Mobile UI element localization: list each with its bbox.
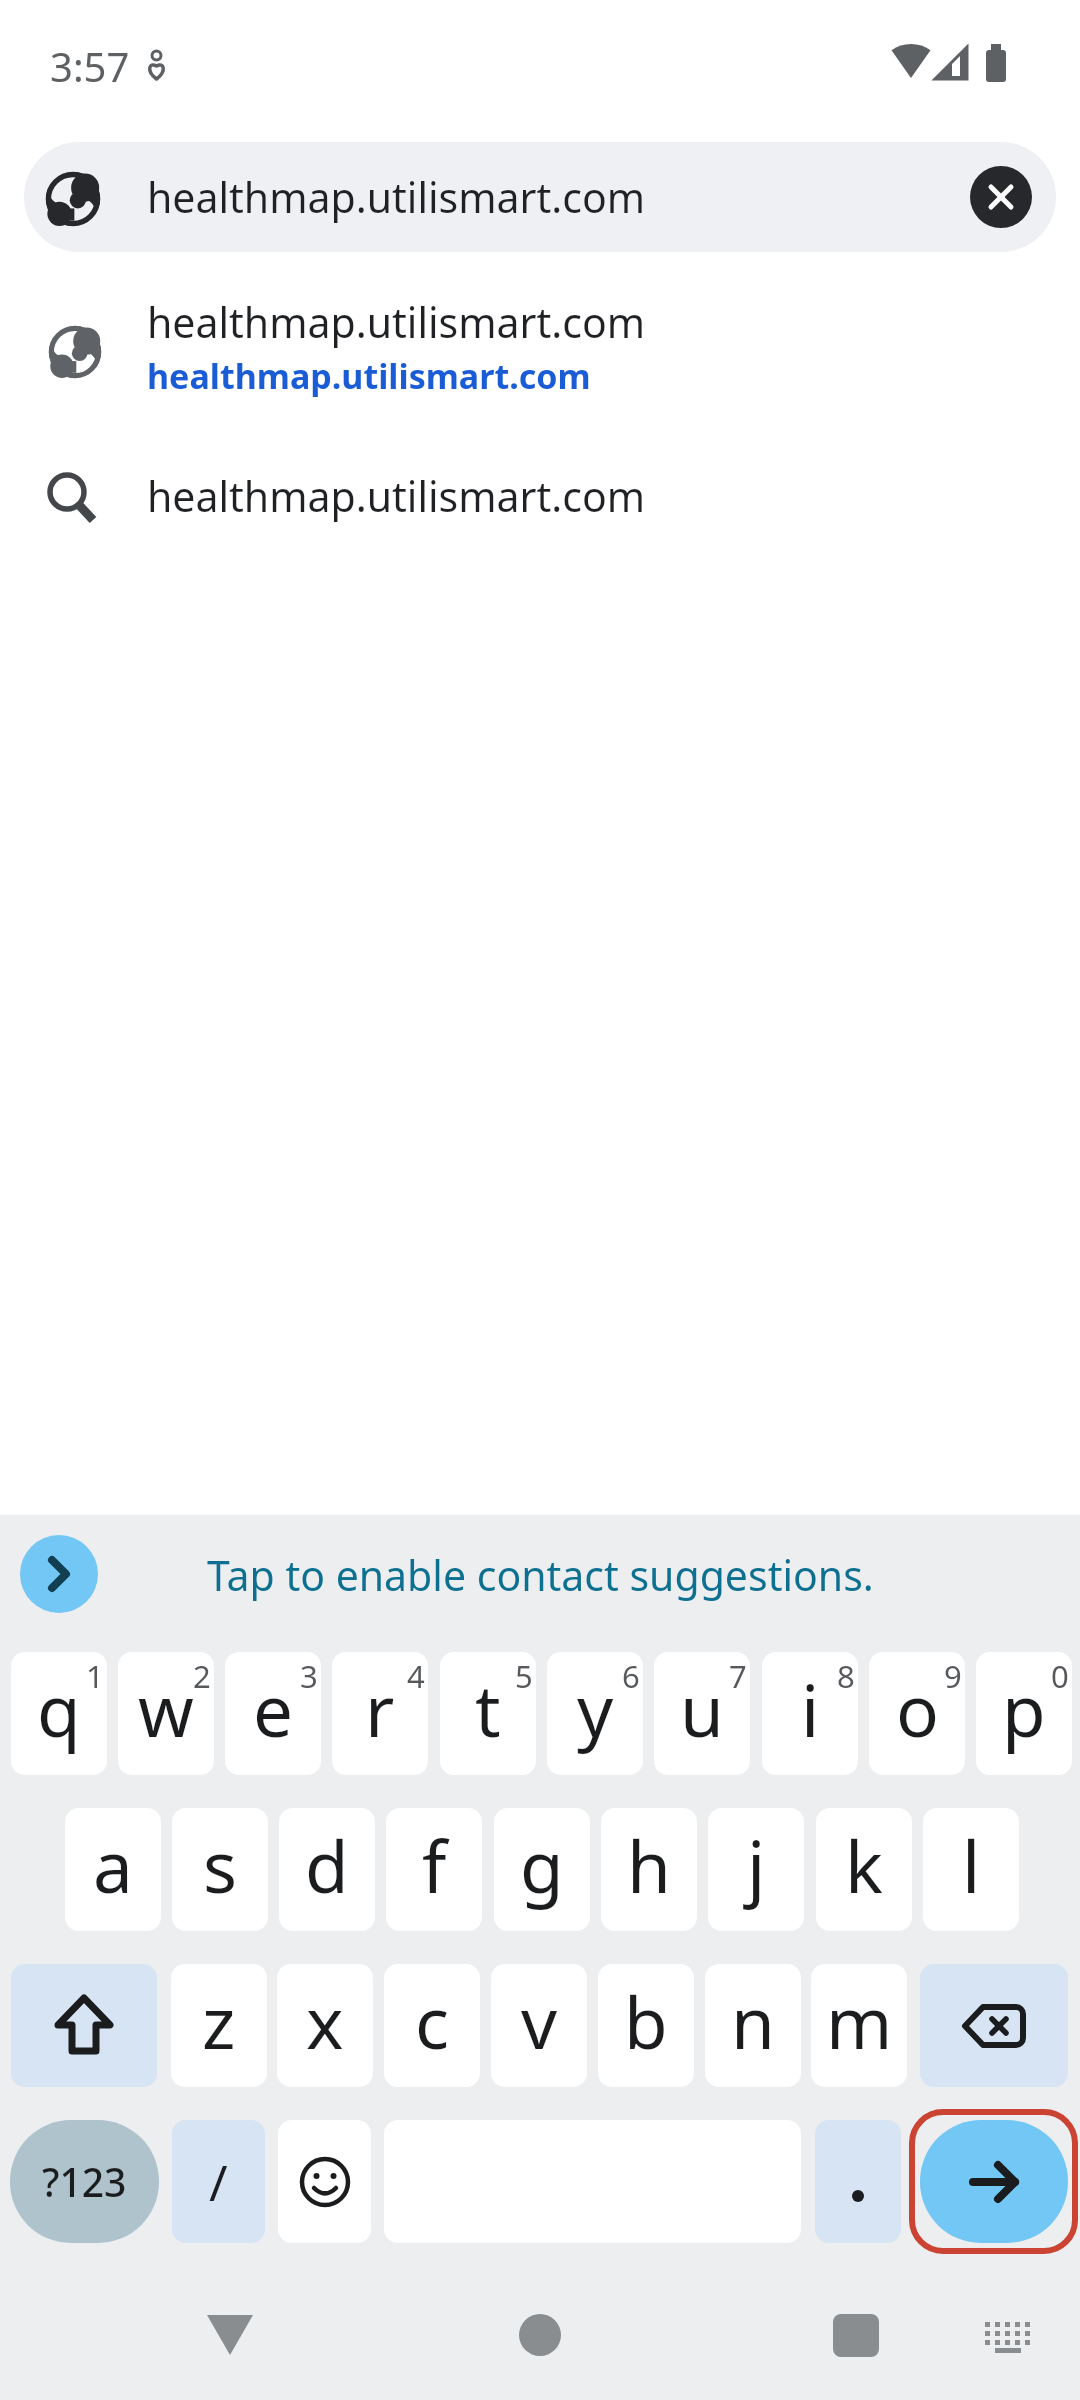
button[interactable] bbox=[20, 1535, 98, 1613]
staticText: z bbox=[202, 1973, 236, 2070]
button[interactable] bbox=[11, 1964, 157, 2087]
button[interactable]: j bbox=[708, 1808, 804, 1931]
button[interactable]: healthmap.utilismart.com bbox=[24, 142, 1056, 252]
staticText: p bbox=[1002, 1661, 1046, 1758]
staticText: c bbox=[415, 1973, 450, 2070]
staticText: n bbox=[731, 1973, 775, 2070]
staticText: 5 bbox=[515, 1655, 533, 1697]
staticText: l bbox=[962, 1817, 981, 1914]
button[interactable]: ?123 bbox=[10, 2120, 159, 2243]
staticText: j bbox=[747, 1817, 766, 1914]
button[interactable]: x bbox=[277, 1964, 373, 2087]
staticText: / bbox=[209, 2148, 228, 2216]
staticText: 3:57 bbox=[50, 39, 130, 93]
staticText: h bbox=[627, 1817, 671, 1914]
staticText: healthmap.utilismart.com bbox=[147, 294, 646, 350]
staticText: d bbox=[305, 1817, 349, 1914]
button[interactable]: healthmap.utilismart.com bbox=[0, 440, 1080, 560]
button[interactable]: h bbox=[601, 1808, 697, 1931]
button[interactable]: a bbox=[65, 1808, 161, 1931]
staticText: t bbox=[475, 1661, 501, 1758]
staticText: ?123 bbox=[42, 2155, 127, 2208]
button[interactable]: i bbox=[762, 1652, 858, 1775]
staticText: q bbox=[37, 1661, 81, 1758]
button[interactable]: u bbox=[654, 1652, 750, 1775]
staticText: 1 bbox=[86, 1655, 104, 1697]
button[interactable]: b bbox=[598, 1964, 694, 2087]
staticText: 4 bbox=[407, 1655, 425, 1697]
staticText: v bbox=[521, 1973, 558, 2070]
button[interactable] bbox=[970, 166, 1032, 228]
button[interactable]: w bbox=[118, 1652, 214, 1775]
button[interactable]: s bbox=[172, 1808, 268, 1931]
staticText: 3 bbox=[300, 1655, 318, 1697]
staticText: w bbox=[138, 1661, 194, 1758]
button[interactable]: p bbox=[976, 1652, 1072, 1775]
staticText: f bbox=[422, 1817, 447, 1914]
staticText: Tap to enable contact suggestions. bbox=[207, 1547, 874, 1603]
button[interactable]: y bbox=[547, 1652, 643, 1775]
staticText: 7 bbox=[729, 1655, 747, 1697]
button[interactable]: v bbox=[491, 1964, 587, 2087]
staticText: m bbox=[826, 1973, 893, 2070]
button[interactable]: f bbox=[386, 1808, 482, 1931]
button[interactable] bbox=[920, 1964, 1068, 2087]
button[interactable]: o bbox=[869, 1652, 965, 1775]
button[interactable] bbox=[815, 2120, 901, 2243]
staticText: y bbox=[577, 1661, 614, 1758]
button[interactable]: r bbox=[332, 1652, 428, 1775]
button[interactable]: t bbox=[440, 1652, 536, 1775]
staticText: u bbox=[680, 1661, 724, 1758]
button[interactable]: n bbox=[705, 1964, 801, 2087]
staticText: 9 bbox=[944, 1655, 962, 1697]
staticText: 2 bbox=[193, 1655, 211, 1697]
staticText: healthmap.utilismart.com bbox=[147, 353, 591, 399]
button[interactable]: healthmap.utilismart.com bbox=[0, 286, 1080, 414]
staticText: i bbox=[801, 1661, 820, 1758]
staticText: o bbox=[896, 1661, 939, 1758]
button[interactable]: l bbox=[923, 1808, 1019, 1931]
button[interactable]: c bbox=[384, 1964, 480, 2087]
staticText: b bbox=[624, 1973, 668, 2070]
staticText: k bbox=[845, 1817, 883, 1914]
button[interactable]: k bbox=[816, 1808, 912, 1931]
button[interactable] bbox=[278, 2120, 371, 2243]
button[interactable]: q bbox=[11, 1652, 107, 1775]
staticText: e bbox=[253, 1661, 294, 1758]
button[interactable]: e bbox=[225, 1652, 321, 1775]
staticText: 6 bbox=[622, 1655, 640, 1697]
staticText: x bbox=[306, 1973, 344, 2070]
button[interactable]: d bbox=[279, 1808, 375, 1931]
button[interactable]: g bbox=[494, 1808, 590, 1931]
button[interactable]: z bbox=[171, 1964, 267, 2087]
staticText: 8 bbox=[837, 1655, 855, 1697]
staticText: healthmap.utilismart.com bbox=[147, 468, 646, 524]
staticText: s bbox=[203, 1817, 238, 1914]
button[interactable]: Tap to enable contact suggestions. bbox=[0, 1515, 1080, 1635]
staticText: 0 bbox=[1051, 1655, 1069, 1697]
staticText: a bbox=[93, 1817, 133, 1914]
button[interactable] bbox=[920, 2120, 1068, 2243]
staticText: r bbox=[365, 1661, 395, 1758]
button[interactable]: m bbox=[811, 1964, 907, 2087]
staticText: g bbox=[520, 1817, 564, 1914]
staticText: healthmap.utilismart.com bbox=[147, 169, 646, 225]
button[interactable]: / bbox=[172, 2120, 265, 2243]
